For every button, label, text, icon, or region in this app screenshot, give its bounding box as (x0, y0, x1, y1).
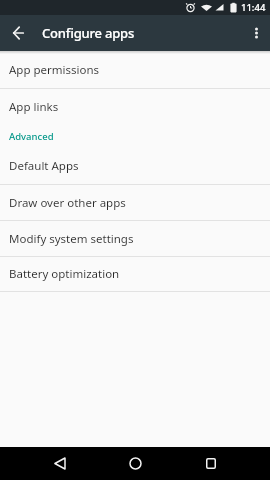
staticText: Advanced (9, 130, 54, 143)
button[interactable] (42, 447, 78, 480)
button[interactable] (117, 447, 153, 480)
staticText: Draw over other apps (9, 195, 126, 211)
staticText: Battery optimization (9, 266, 120, 282)
button[interactable]: App links (0, 89, 270, 124)
button[interactable] (0, 15, 36, 51)
button[interactable] (193, 447, 229, 480)
button[interactable]: Battery optimization (0, 257, 270, 291)
staticText: Default Apps (9, 158, 79, 174)
button[interactable] (246, 21, 270, 45)
button[interactable]: Modify system settings (0, 221, 270, 256)
staticText: App links (9, 99, 59, 115)
button[interactable]: Default Apps (0, 148, 270, 184)
button[interactable]: App permissions (0, 51, 270, 88)
staticText: App permissions (9, 62, 100, 78)
button[interactable]: Draw over other apps (0, 185, 270, 220)
staticText: Configure apps (42, 24, 135, 42)
staticText: Modify system settings (9, 231, 134, 247)
staticText: 11:44 (241, 1, 266, 14)
